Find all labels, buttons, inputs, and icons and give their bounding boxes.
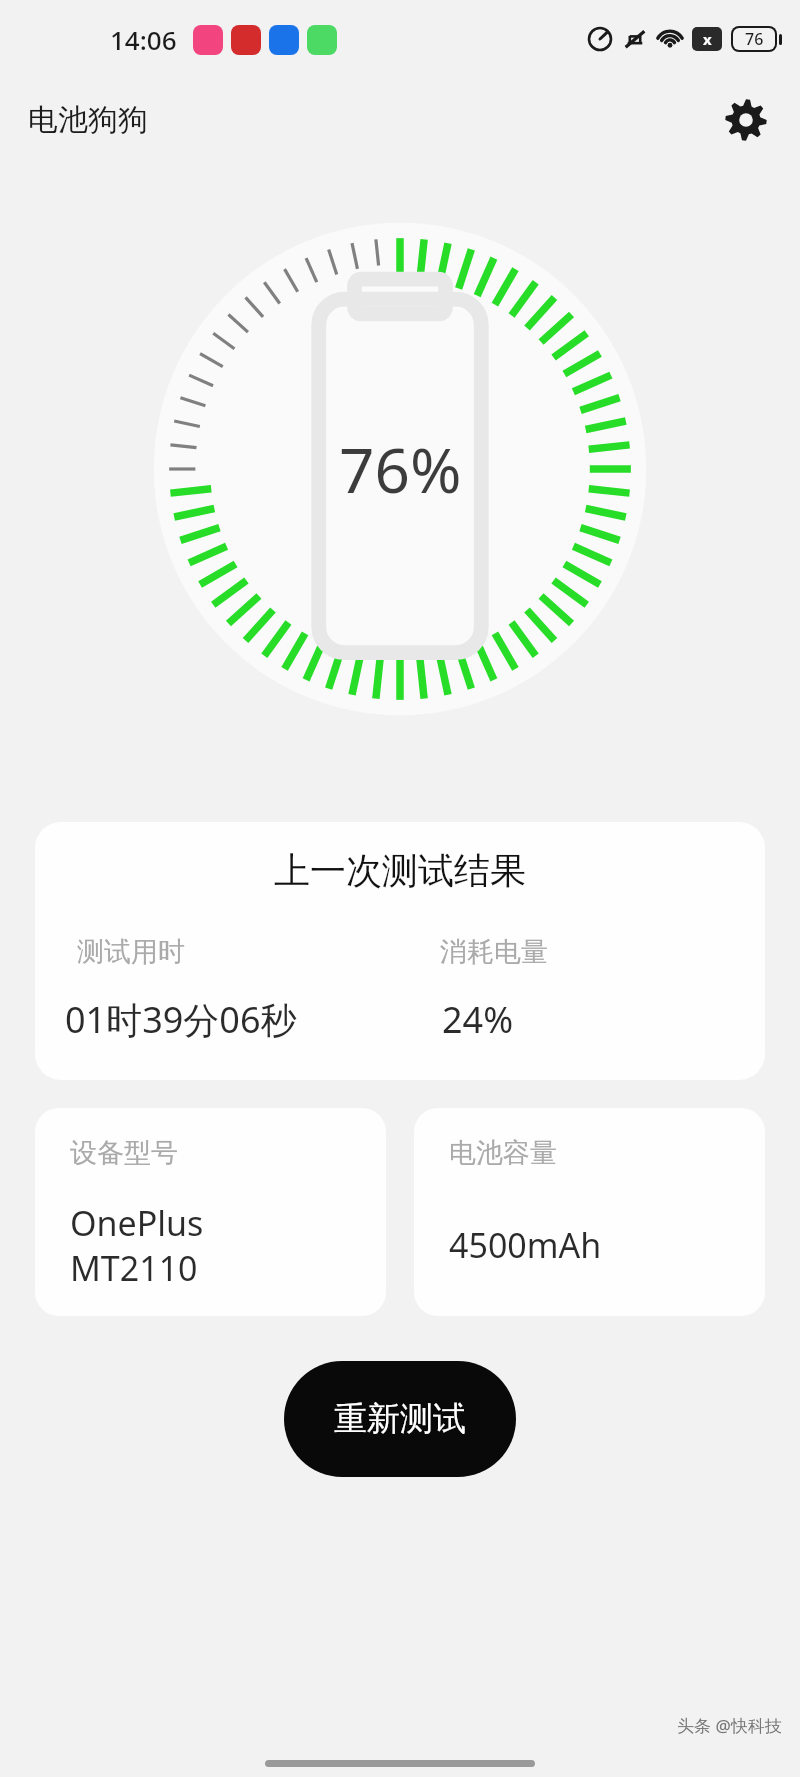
- staticText: 上一次测试结果: [35, 848, 765, 893]
- staticText: 01时39分06秒: [65, 995, 297, 1044]
- button[interactable]: 设备型号: [35, 1108, 386, 1316]
- button[interactable]: 电池容量: [414, 1108, 765, 1316]
- button[interactable]: 重新测试: [284, 1361, 516, 1477]
- staticText: 消耗电量: [440, 935, 548, 969]
- staticText: 电池狗狗: [28, 101, 148, 139]
- staticText: 测试用时: [77, 935, 185, 969]
- button[interactable]: Settings: [720, 94, 772, 146]
- staticText: 76: [745, 28, 764, 50]
- button[interactable]: 上一次测试结果: [35, 822, 765, 1080]
- staticText: 24%: [442, 995, 514, 1044]
- staticText: OnePlus MT2110: [70, 1200, 204, 1290]
- staticText: 电池容量: [449, 1136, 557, 1170]
- staticText: 重新测试: [334, 1398, 466, 1440]
- staticText: x: [703, 29, 712, 49]
- staticText: 设备型号: [70, 1136, 178, 1170]
- staticText: 4500mAh: [449, 1222, 602, 1268]
- staticText: 14:06: [110, 22, 177, 57]
- staticText: 76%: [339, 427, 462, 511]
- staticText: 头条 @快科技: [677, 1714, 782, 1737]
